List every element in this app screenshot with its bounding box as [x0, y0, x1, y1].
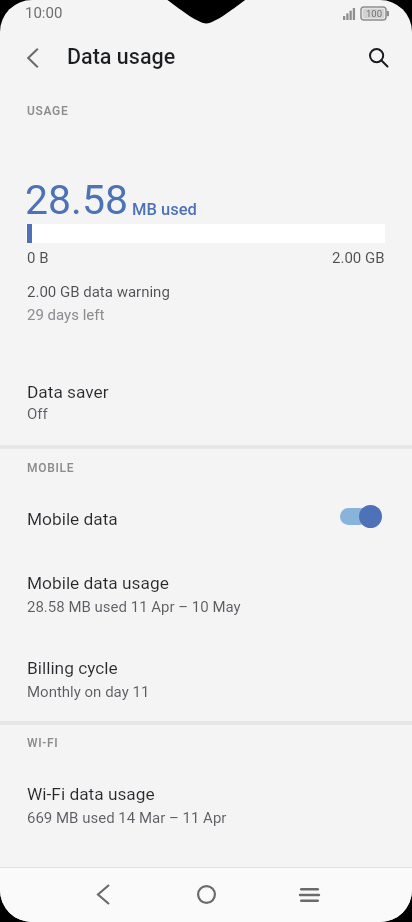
staticText: Data usage [67, 44, 176, 69]
button[interactable]: Back [77, 867, 129, 922]
button[interactable]: Mobile data [0, 497, 412, 545]
button[interactable]: Navigate up [11, 36, 55, 80]
staticText: MOBILE [27, 461, 75, 475]
staticText: 100 [366, 8, 383, 19]
staticText: 2.00 GB data warning [27, 283, 170, 301]
staticText: 669 MB used 14 Mar – 11 Apr [27, 809, 227, 827]
button[interactable]: Search [357, 36, 401, 80]
staticText: 28.58 MB used 11 Apr – 10 May [27, 598, 241, 616]
staticText: USAGE [27, 104, 69, 118]
staticText: Monthly on day 11 [27, 683, 150, 701]
staticText: Mobile data usage [27, 573, 169, 593]
staticText: Off [27, 405, 48, 423]
button[interactable]: Home [180, 867, 232, 922]
button[interactable]: Mobile data usage [0, 573, 412, 622]
staticText: MB used [132, 200, 197, 219]
staticText: Billing cycle [27, 658, 118, 678]
staticText: 10:00 [25, 4, 63, 22]
staticText: 28.58 [25, 176, 128, 224]
staticText: Data saver [27, 382, 109, 402]
staticText: WI-FI [27, 736, 59, 750]
button[interactable]: Data saver [0, 382, 412, 429]
staticText: Wi-Fi data usage [27, 784, 155, 804]
staticText: 29 days left [27, 306, 105, 324]
staticText: Mobile data [27, 509, 118, 529]
button[interactable]: Billing cycle [0, 658, 412, 707]
button[interactable]: Recent apps [283, 867, 335, 922]
staticText: 0 B [27, 249, 49, 267]
staticText: 2.00 GB [332, 249, 385, 267]
button[interactable]: Wi-Fi data usage [0, 784, 412, 833]
